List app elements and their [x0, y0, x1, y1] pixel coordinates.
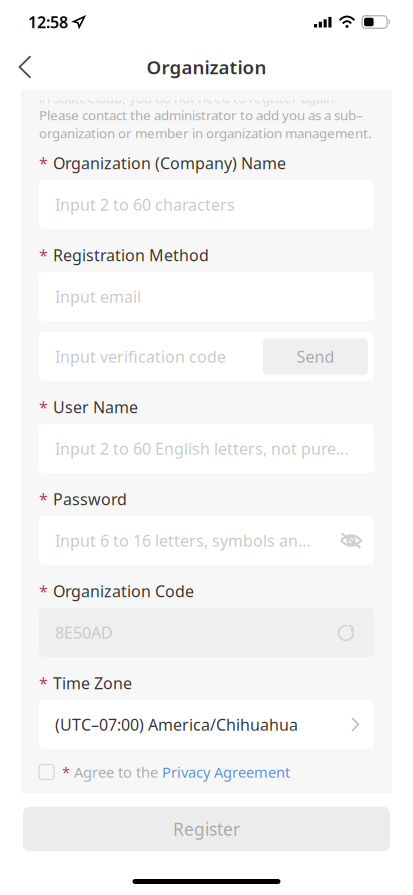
staticText: * [39, 672, 48, 694]
staticText: in SoliteCloud, you do not need to regis… [39, 89, 338, 107]
staticText: Agree to the [70, 762, 162, 782]
staticText: Input verification code [55, 346, 226, 367]
button[interactable]: Send [263, 338, 368, 374]
staticText: Input email [55, 286, 141, 307]
staticText: Input 2 to 60 characters [55, 194, 235, 215]
staticText: * [39, 152, 48, 174]
staticText: Organization Code [53, 580, 194, 602]
staticText: Privacy Agreement [162, 762, 290, 782]
button[interactable]: * [39, 760, 374, 784]
staticText: 8E50AD [55, 622, 113, 643]
staticText: Input 6 to 16 letters, symbols and… [55, 530, 320, 551]
staticText: * [54, 762, 70, 782]
staticText: Password [53, 488, 127, 510]
button[interactable]: (UTC–07:00) America/Chihuahua [39, 700, 374, 749]
staticText: Organization [146, 55, 266, 79]
staticText: Registration Method [53, 244, 209, 266]
staticText: * [39, 488, 48, 510]
button[interactable]: Register [23, 807, 390, 851]
staticText: Register [173, 817, 240, 840]
button[interactable]: Refresh organization code [326, 612, 366, 652]
button[interactable]: Show password [331, 520, 371, 560]
staticText: (UTC–07:00) America/Chihuahua [55, 714, 298, 735]
button[interactable]: Back [0, 44, 50, 90]
staticText: * [39, 396, 48, 418]
staticText: Time Zone [53, 672, 132, 694]
staticText: organization or member in organization m… [39, 124, 372, 142]
staticText: * [39, 580, 48, 602]
staticText: 12:58 [28, 11, 68, 33]
staticText: User Name [53, 396, 138, 418]
staticText: Send [296, 346, 334, 367]
staticText: * [39, 244, 48, 266]
staticText: Input 2 to 60 English letters, not pure … [55, 438, 350, 459]
staticText: Organization (Company) Name [53, 152, 286, 174]
staticText: Please contact the administrator to add … [39, 106, 363, 124]
